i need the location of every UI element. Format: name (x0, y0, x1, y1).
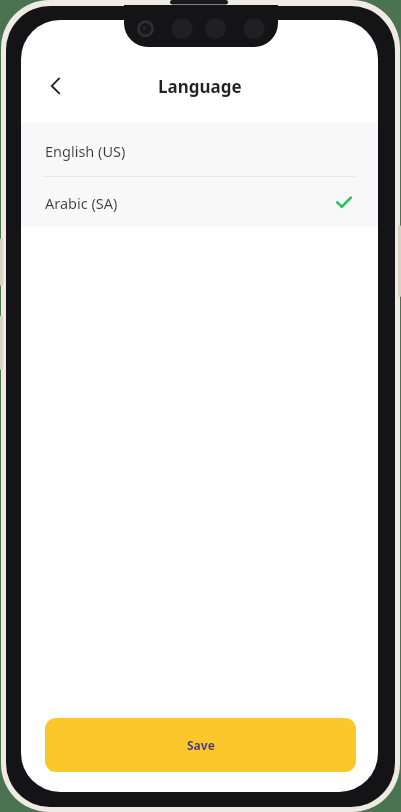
staticText: Arabic (SA) (45, 193, 118, 213)
button[interactable]: English (US) (21, 122, 378, 176)
staticText: Save (187, 737, 215, 753)
button[interactable]: Arabic (SA) (21, 177, 378, 227)
button[interactable]: Save (45, 718, 356, 772)
staticText: English (US) (45, 141, 126, 161)
button[interactable] (41, 71, 69, 99)
staticText: Language (158, 75, 242, 98)
